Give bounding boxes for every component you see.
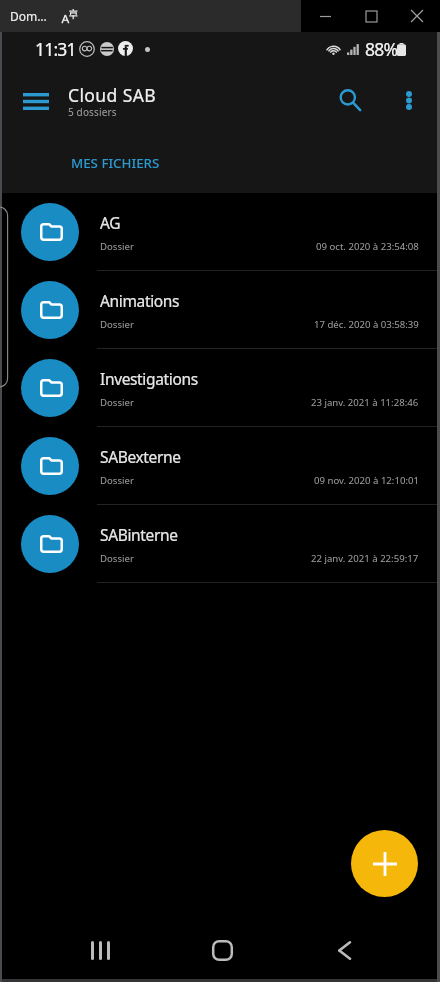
staticText: SABexterne xyxy=(100,446,181,467)
staticText: Investigations xyxy=(100,368,198,389)
button[interactable]: SABinterne xyxy=(2,505,437,583)
button[interactable]: Investigations xyxy=(2,349,437,427)
staticText: AG xyxy=(100,212,121,233)
button[interactable]: Maximize xyxy=(348,0,394,32)
button[interactable]: Navigation menu xyxy=(11,76,61,126)
staticText: Dossier xyxy=(100,240,134,253)
button[interactable]: Minimize xyxy=(302,0,348,32)
button[interactable]: Animations xyxy=(2,271,437,349)
button[interactable]: SABexterne xyxy=(2,427,437,505)
button[interactable]: More options xyxy=(388,79,430,121)
button[interactable]: MES FICHIERS xyxy=(50,144,181,182)
staticText: SABinterne xyxy=(100,524,178,545)
button[interactable]: Recent apps xyxy=(70,920,130,979)
button[interactable]: Search xyxy=(327,77,373,123)
staticText: 09 nov. 2020 à 12:10:01 xyxy=(314,474,419,487)
staticText: 88% xyxy=(365,37,398,61)
staticText: Dossier xyxy=(100,552,134,565)
staticText: Animations xyxy=(100,290,180,311)
button[interactable]: Back xyxy=(314,920,374,979)
button[interactable]: Close xyxy=(394,0,440,32)
button[interactable]: Add xyxy=(351,830,418,897)
staticText: 23 janv. 2021 à 11:28:46 xyxy=(311,396,419,409)
staticText: MES FICHIERS xyxy=(71,154,160,172)
staticText: 11:31 xyxy=(35,37,76,61)
staticText: 22 janv. 2021 à 22:59:17 xyxy=(311,552,419,565)
staticText: 09 oct. 2020 à 23:54:08 xyxy=(316,240,419,253)
button[interactable]: AG xyxy=(2,193,437,271)
staticText: 5 dossiers xyxy=(68,105,117,119)
staticText: Dossier xyxy=(100,474,134,487)
staticText: Dossier xyxy=(100,396,134,409)
staticText: Dom… xyxy=(10,8,47,24)
staticText: Dossier xyxy=(100,318,134,331)
staticText: 17 déc. 2020 à 03:58:39 xyxy=(314,318,419,331)
staticText: Cloud SAB xyxy=(68,83,157,107)
button[interactable]: Home xyxy=(192,920,252,979)
